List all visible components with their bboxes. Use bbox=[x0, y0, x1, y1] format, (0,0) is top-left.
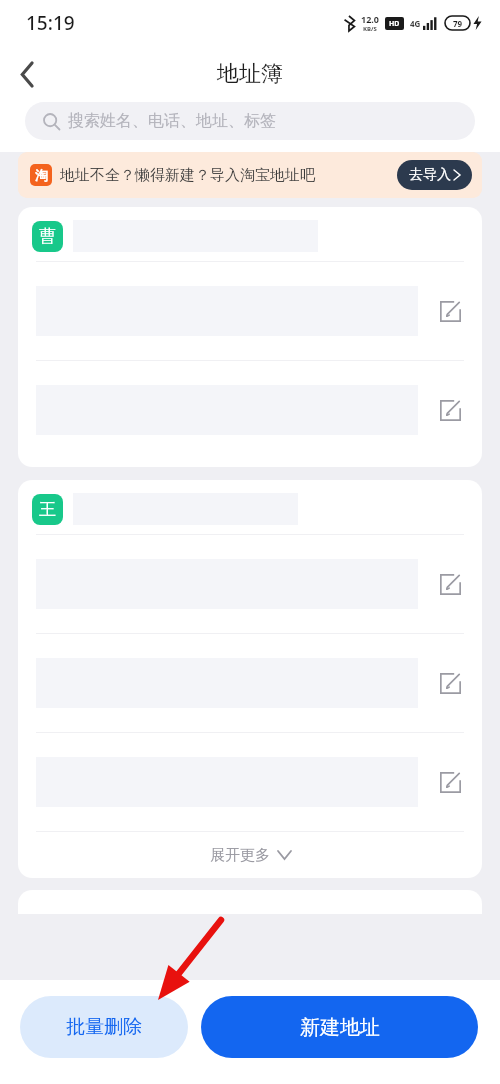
button[interactable]: 搜索姓名、电话、地址、标签 bbox=[25, 102, 475, 140]
staticText: 12.0 bbox=[361, 13, 379, 25]
staticText: HD bbox=[389, 19, 400, 29]
staticText: 地址不全？懒得新建？导入淘宝地址吧 bbox=[60, 166, 315, 185]
staticText: 新建地址 bbox=[300, 1015, 380, 1040]
staticText: 地址簿 bbox=[217, 60, 283, 88]
button[interactable]: 编辑地址 bbox=[432, 665, 468, 701]
staticText: 4G bbox=[410, 18, 421, 29]
button[interactable]: 去导入 bbox=[409, 160, 460, 190]
button[interactable]: 新建地址 bbox=[201, 996, 478, 1058]
button[interactable]: 展开更多 bbox=[18, 832, 482, 878]
button[interactable]: 曹 bbox=[18, 207, 482, 467]
button[interactable]: 编辑地址 bbox=[432, 392, 468, 428]
staticText: 批量删除 bbox=[66, 1015, 142, 1039]
button[interactable]: 编辑地址 bbox=[36, 733, 468, 831]
button[interactable]: 批量删除 bbox=[20, 996, 188, 1058]
staticText: 15:19 bbox=[26, 10, 75, 36]
button[interactable]: 编辑地址 bbox=[36, 634, 468, 732]
staticText: KB/S bbox=[363, 25, 377, 33]
staticText: 搜索姓名、电话、地址、标签 bbox=[68, 111, 276, 131]
staticText: 展开更多 bbox=[210, 846, 270, 865]
button[interactable]: 编辑地址 bbox=[432, 566, 468, 602]
button[interactable]: 返回 bbox=[0, 47, 54, 101]
staticText: 79 bbox=[453, 18, 463, 29]
staticText: 去导入 bbox=[409, 166, 451, 184]
button[interactable]: 编辑地址 bbox=[432, 293, 468, 329]
button[interactable]: 王 bbox=[18, 480, 482, 878]
button[interactable]: 编辑地址 bbox=[36, 361, 468, 459]
button[interactable]: 编辑地址 bbox=[36, 535, 468, 633]
button[interactable]: 编辑地址 bbox=[36, 262, 468, 360]
staticText: 王 bbox=[39, 499, 56, 520]
staticText: 淘 bbox=[35, 167, 48, 183]
button[interactable]: 编辑地址 bbox=[432, 764, 468, 800]
staticText: 曹 bbox=[39, 226, 56, 247]
